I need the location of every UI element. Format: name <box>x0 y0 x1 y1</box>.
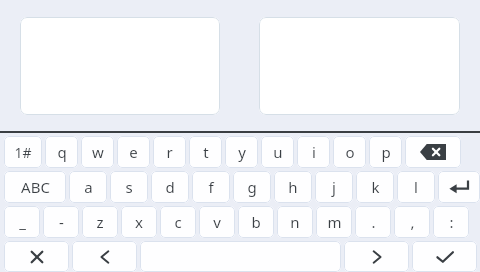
button[interactable]: u <box>261 136 294 168</box>
staticText: q <box>57 142 67 162</box>
button[interactable]: l <box>397 171 435 203</box>
button[interactable]: r <box>153 136 186 168</box>
button[interactable]: : <box>433 206 469 238</box>
button[interactable]: f <box>192 171 230 203</box>
button[interactable]: d <box>151 171 189 203</box>
staticText: ABC <box>21 177 50 197</box>
button[interactable]: y <box>225 136 258 168</box>
button[interactable] <box>259 17 460 115</box>
button[interactable]: w <box>81 136 114 168</box>
staticText: n <box>290 212 300 232</box>
button[interactable]: Backspace <box>405 136 461 168</box>
button[interactable]: . <box>355 206 391 238</box>
button[interactable]: h <box>274 171 312 203</box>
button[interactable]: Enter <box>438 171 480 203</box>
staticText: r <box>166 142 173 162</box>
staticText: u <box>273 142 283 162</box>
staticText: w <box>92 142 104 162</box>
staticText: e <box>129 142 138 162</box>
staticText: s <box>125 177 133 197</box>
staticText: y <box>238 142 246 162</box>
button[interactable]: p <box>369 136 402 168</box>
staticText: : <box>449 212 454 232</box>
button[interactable]: o <box>333 136 366 168</box>
staticText: x <box>135 212 143 232</box>
staticText: , <box>410 212 415 232</box>
staticText: v <box>213 212 221 232</box>
button[interactable]: - <box>43 206 79 238</box>
button[interactable]: n <box>277 206 313 238</box>
button[interactable]: , <box>394 206 430 238</box>
button[interactable]: t <box>189 136 222 168</box>
button[interactable]: b <box>238 206 274 238</box>
staticText: g <box>247 177 257 197</box>
staticText: j <box>332 177 336 197</box>
button[interactable]: _ <box>4 206 40 238</box>
button[interactable]: q <box>45 136 78 168</box>
button[interactable]: s <box>110 171 148 203</box>
staticText: k <box>371 177 380 197</box>
button[interactable]: Previous <box>72 241 137 272</box>
button[interactable]: g <box>233 171 271 203</box>
button[interactable]: e <box>117 136 150 168</box>
button[interactable]: Done <box>412 241 477 272</box>
staticText: a <box>84 177 93 197</box>
staticText: d <box>165 177 175 197</box>
button[interactable] <box>20 17 220 115</box>
staticText: f <box>208 177 214 197</box>
button[interactable]: Close <box>4 241 69 272</box>
staticText: . <box>371 212 376 232</box>
button[interactable]: i <box>297 136 330 168</box>
staticText: t <box>203 142 209 162</box>
button[interactable]: z <box>82 206 118 238</box>
staticText: _ <box>19 212 26 232</box>
staticText: - <box>59 212 64 232</box>
staticText: p <box>381 142 391 162</box>
button[interactable]: Next <box>344 241 409 272</box>
staticText: i <box>312 142 316 162</box>
staticText: h <box>288 177 298 197</box>
button[interactable]: m <box>316 206 352 238</box>
staticText: 1# <box>14 143 32 162</box>
button[interactable]: ABC <box>4 171 66 203</box>
button[interactable]: a <box>69 171 107 203</box>
button[interactable]: j <box>315 171 353 203</box>
button[interactable]: v <box>199 206 235 238</box>
staticText: o <box>345 142 355 162</box>
button[interactable]: c <box>160 206 196 238</box>
staticText: l <box>414 177 418 197</box>
staticText: b <box>251 212 261 232</box>
staticText: c <box>174 212 182 232</box>
staticText: m <box>327 212 342 232</box>
staticText: z <box>96 212 104 232</box>
button[interactable]: 1# <box>4 136 42 168</box>
button[interactable]: k <box>356 171 394 203</box>
button[interactable]: x <box>121 206 157 238</box>
button[interactable]: Space <box>140 241 341 272</box>
